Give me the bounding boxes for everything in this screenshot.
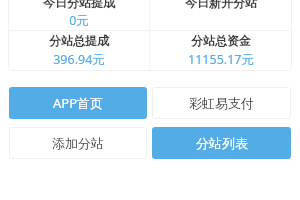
button[interactable]: APP首页 — [9, 87, 147, 119]
button[interactable]: 添加分站 — [9, 127, 147, 159]
staticText: 彩虹易支付 — [189, 95, 254, 111]
staticText: 分站列表 — [196, 135, 248, 151]
staticText: 今日分站提成 — [43, 0, 115, 10]
staticText: 今日新开分站 — [185, 0, 257, 10]
staticText: 396.94元 — [53, 51, 105, 68]
button[interactable]: 分站列表 — [152, 127, 291, 159]
staticText: 11155.17元 — [188, 51, 254, 68]
staticText: 0元 — [69, 12, 89, 29]
button[interactable]: 彩虹易支付 — [152, 87, 291, 119]
staticText: 添加分站 — [52, 135, 104, 151]
staticText: APP首页 — [53, 94, 104, 112]
staticText: 分站总提成 — [49, 33, 109, 48]
staticText: 分站总资金 — [191, 33, 251, 48]
